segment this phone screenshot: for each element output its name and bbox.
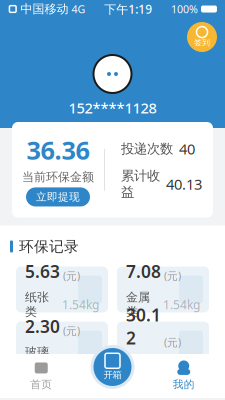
staticText: 1.54kg bbox=[163, 363, 200, 379]
staticText: (元) bbox=[164, 269, 181, 283]
staticText: 中国移动 bbox=[20, 2, 68, 16]
staticText: 立即提现 bbox=[36, 190, 80, 203]
staticText: 4G bbox=[71, 2, 85, 16]
staticText: 152****1128 bbox=[68, 98, 156, 117]
staticText: 当前环保金额 bbox=[22, 170, 94, 184]
button[interactable]: 签到 bbox=[185, 20, 219, 54]
staticText: 环保记录 bbox=[19, 237, 79, 255]
staticText: 100% bbox=[171, 2, 198, 16]
staticText: 我的 bbox=[173, 378, 195, 391]
staticText: 投递次数 bbox=[121, 141, 173, 157]
staticText: 1.54kg bbox=[163, 296, 200, 312]
button[interactable]: 首页 bbox=[0, 354, 82, 398]
staticText: (元) bbox=[63, 324, 80, 338]
staticText: 累计收益 bbox=[121, 168, 160, 200]
staticText: 2.30 bbox=[25, 315, 60, 338]
staticText: (元) bbox=[63, 269, 80, 283]
staticText: 塑料类 bbox=[126, 356, 150, 386]
staticText: 40 bbox=[179, 139, 195, 159]
staticText: 40.13 bbox=[166, 174, 202, 194]
button[interactable]: 立即提现 bbox=[26, 187, 90, 206]
staticText: 1.54kg bbox=[62, 296, 99, 312]
staticText: (元) bbox=[164, 335, 181, 349]
staticText: 玻璃类 bbox=[25, 345, 49, 374]
staticText: 纸张类 bbox=[25, 290, 49, 319]
staticText: 30.12 bbox=[126, 303, 161, 349]
staticText: 5.63 bbox=[25, 260, 60, 283]
staticText: 开箱 bbox=[103, 369, 121, 381]
staticText: 1.54kg bbox=[62, 351, 99, 367]
staticText: 7.08 bbox=[126, 260, 161, 283]
button[interactable]: 我的 bbox=[142, 354, 225, 398]
staticText: 金属类 bbox=[126, 290, 150, 319]
staticText: 36.36 bbox=[26, 133, 89, 167]
staticText: 下午1:19 bbox=[104, 1, 152, 17]
staticText: 签到 bbox=[194, 38, 210, 47]
button[interactable]: 开箱 bbox=[88, 343, 136, 391]
staticText: 首页 bbox=[30, 378, 52, 391]
